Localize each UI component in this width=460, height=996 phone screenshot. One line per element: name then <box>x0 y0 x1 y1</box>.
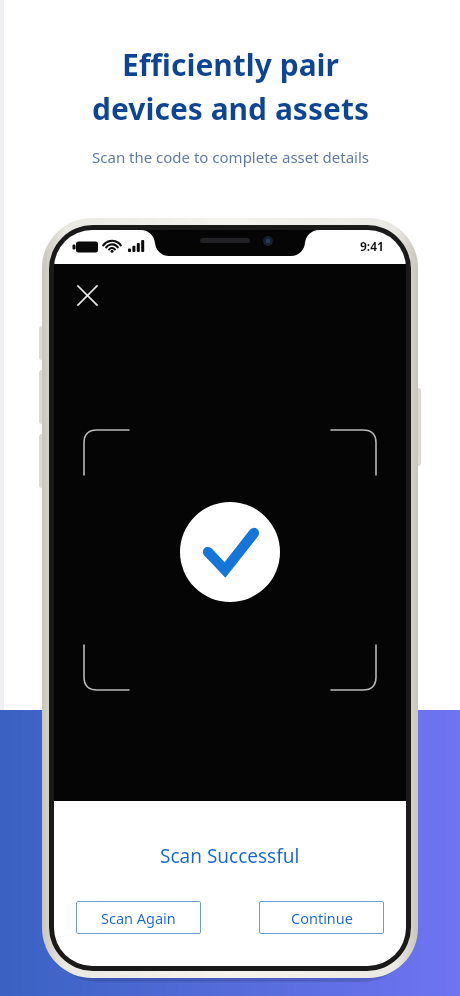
staticText: Efficiently pair <box>122 44 339 85</box>
staticText: Continue <box>291 908 353 928</box>
staticText: Scan Again <box>101 908 176 928</box>
staticText: 9:41 <box>360 238 384 254</box>
button[interactable]: Close <box>68 276 106 314</box>
button[interactable]: Continue <box>259 901 384 934</box>
button[interactable]: Scan Again <box>76 901 201 934</box>
staticText: devices and assets <box>92 88 369 129</box>
staticText: Scan the code to complete asset details <box>92 147 369 167</box>
staticText: Scan Successful <box>160 843 300 869</box>
